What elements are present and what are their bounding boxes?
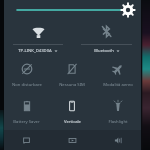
button[interactable]: Battery Saver <box>4 93 49 130</box>
staticText: Non disturbare <box>12 82 42 88</box>
button[interactable]: Wi-Fi <box>4 19 72 56</box>
staticText: Bluetooth <box>94 48 114 54</box>
staticText: Verticale <box>64 119 81 125</box>
button[interactable]: Bluetooth <box>72 19 141 56</box>
staticText: TP-LINK_D43D0A <box>18 48 52 54</box>
staticText: Battery Saver <box>13 119 40 125</box>
button[interactable]: Brightness <box>4 0 141 19</box>
staticText: Modalità aereo <box>103 82 133 88</box>
staticText: Nessuna SIM <box>59 82 85 88</box>
button[interactable]: Nessuna SIM <box>49 56 95 93</box>
button[interactable]: Modalità aereo <box>95 56 141 93</box>
button[interactable]: Verticale <box>49 93 95 130</box>
button[interactable]: Non disturbare <box>4 56 49 93</box>
staticText: Flashlight <box>108 119 128 125</box>
button[interactable]: Flashlight <box>95 93 141 130</box>
